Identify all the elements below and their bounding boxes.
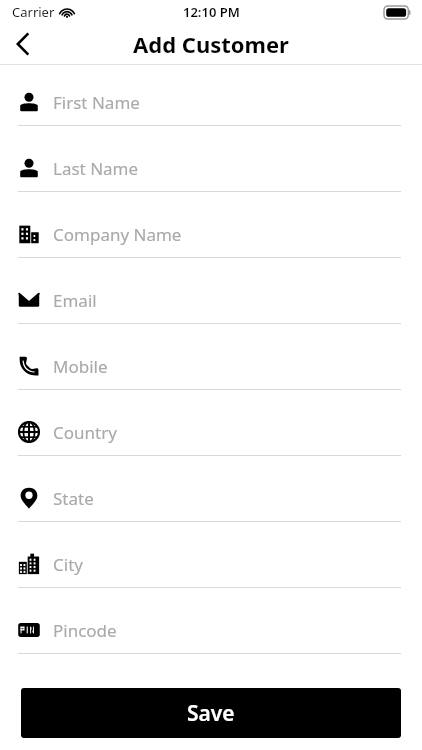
staticText: Pincode: [53, 619, 117, 642]
staticText: State: [53, 487, 94, 510]
button[interactable]: First Name: [0, 79, 422, 145]
button[interactable]: Country: [0, 409, 422, 475]
button[interactable]: Email: [0, 277, 422, 343]
button[interactable]: Pincode: [0, 607, 422, 673]
staticText: Save: [187, 699, 235, 728]
staticText: Country: [53, 421, 117, 444]
button[interactable]: Mobile: [0, 343, 422, 409]
button[interactable]: Company Name: [0, 211, 422, 277]
staticText: First Name: [53, 91, 140, 114]
button[interactable]: Back: [0, 24, 46, 64]
staticText: Last Name: [53, 157, 139, 180]
staticText: 12:10 PM: [183, 3, 240, 21]
staticText: Carrier: [12, 3, 55, 21]
button[interactable]: Last Name: [0, 145, 422, 211]
button[interactable]: Save: [21, 688, 401, 738]
button[interactable]: City: [0, 541, 422, 607]
button[interactable]: State: [0, 475, 422, 541]
staticText: Add Customer: [133, 29, 289, 59]
staticText: Mobile: [53, 355, 108, 378]
staticText: Email: [53, 289, 97, 312]
staticText: City: [53, 553, 83, 576]
staticText: Company Name: [53, 223, 182, 246]
